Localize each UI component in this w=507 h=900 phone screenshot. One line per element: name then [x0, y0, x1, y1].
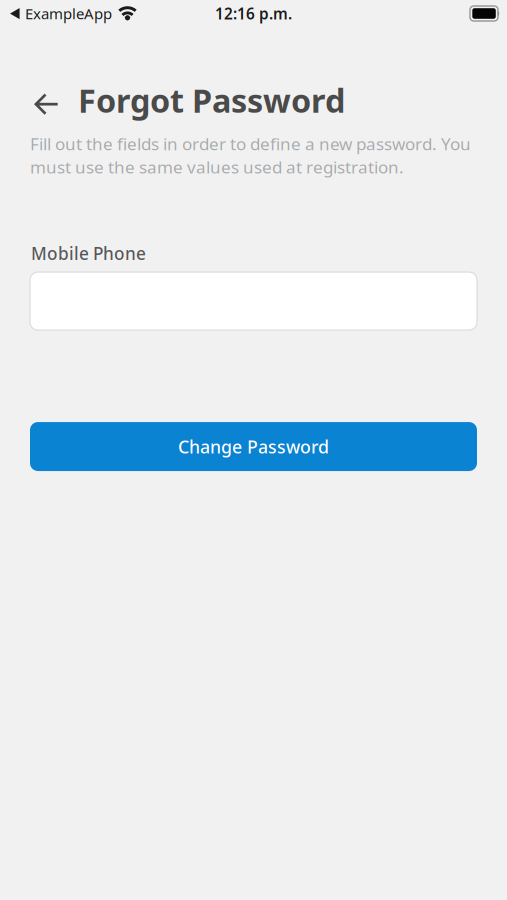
staticText: Fill out the fields in order to define a…: [30, 132, 471, 179]
staticText: 12:16 p.m.: [215, 3, 292, 24]
button[interactable]: Change Password: [30, 422, 477, 471]
staticText: Mobile Phone: [31, 242, 146, 265]
staticText: Forgot Password: [78, 78, 345, 122]
button[interactable]: Back: [32, 81, 62, 119]
staticText: Change Password: [178, 434, 329, 459]
button[interactable]: Mobile Phone: [30, 272, 477, 330]
staticText: ExampleApp: [25, 3, 112, 24]
